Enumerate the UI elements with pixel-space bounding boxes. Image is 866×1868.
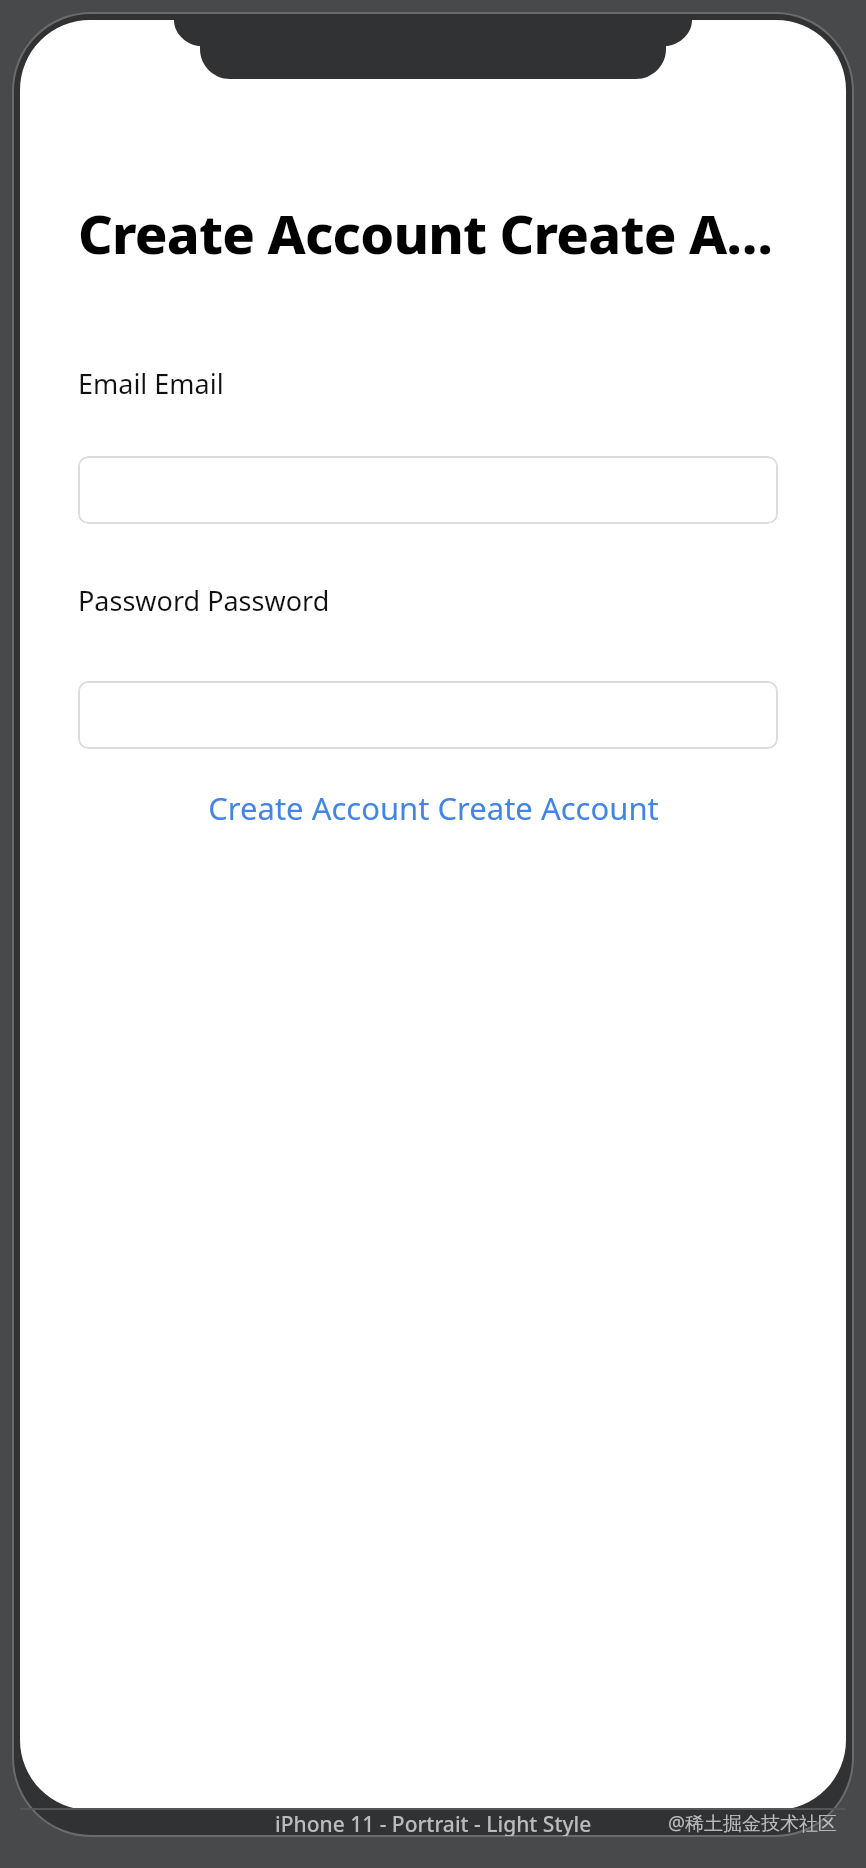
button[interactable] (78, 681, 778, 749)
button[interactable]: Create Account Create Account (20, 777, 846, 839)
staticText: @稀土掘金技术社区 (668, 1810, 838, 1836)
staticText: Create Account Create Account (78, 196, 778, 270)
button[interactable] (78, 456, 778, 524)
staticText: iPhone 11 - Portrait - Light Style (275, 1810, 592, 1836)
staticText: Password Password (78, 582, 330, 619)
staticText: Create Account Create Account (208, 787, 659, 829)
staticText: Email Email (78, 365, 224, 402)
